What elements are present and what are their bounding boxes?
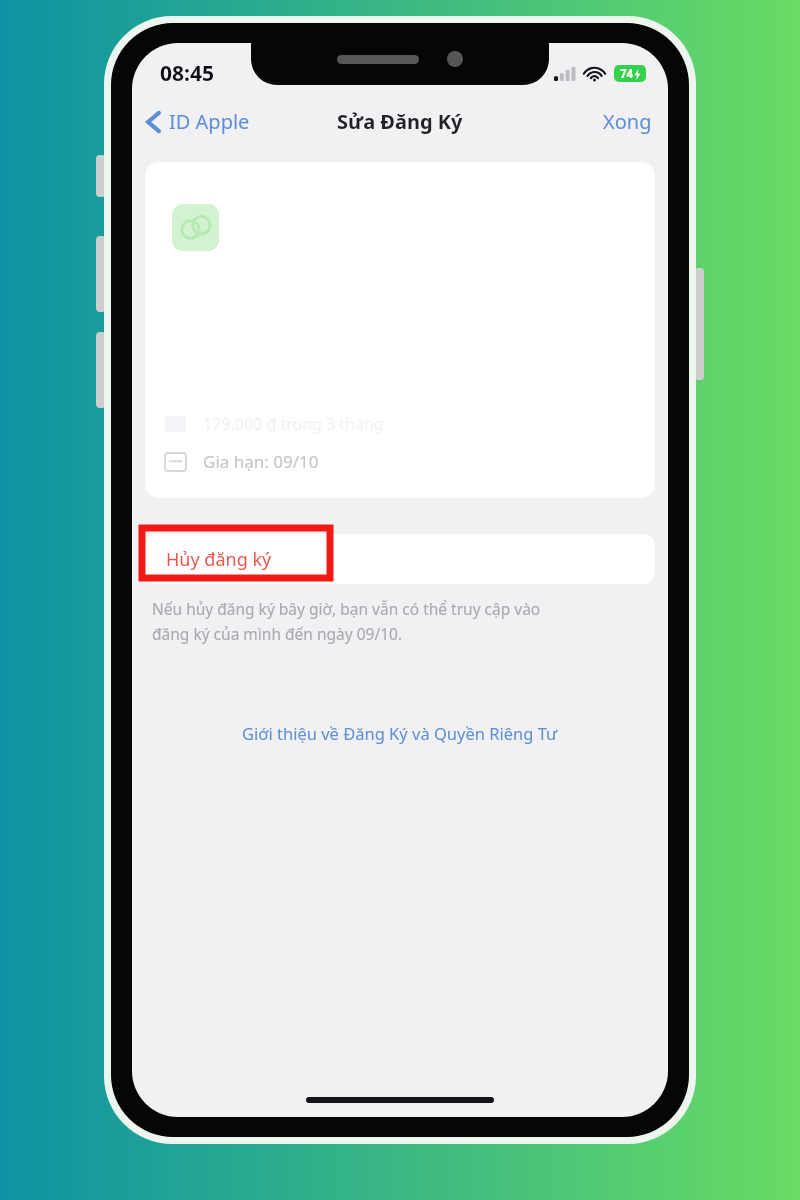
staticText: Gia hạn: 09/10	[203, 450, 319, 473]
staticText: 08:45	[160, 59, 214, 88]
button[interactable]: ID Apple	[132, 100, 260, 143]
staticText: ID Apple	[169, 108, 250, 135]
staticText: Sửa Đăng Ký	[337, 108, 463, 135]
staticText: Nếu hủy đăng ký bây giờ, bạn vẫn có thể …	[152, 598, 541, 644]
staticText: Xong	[603, 108, 652, 135]
staticText: Giới thiệu về Đăng Ký và Quyền Riêng Tư	[242, 722, 558, 744]
button[interactable]: Hủy đăng ký	[145, 534, 655, 584]
button[interactable]: Giới thiệu về Đăng Ký và Quyền Riêng Tư	[132, 716, 668, 750]
button[interactable]: 179.000 ₫ trong 3 tháng	[145, 162, 655, 498]
staticText: 179.000 ₫ trong 3 tháng	[203, 413, 384, 435]
button[interactable]: Xong	[587, 100, 668, 143]
staticText: 74	[620, 66, 634, 82]
staticText: Hủy đăng ký	[166, 547, 272, 572]
